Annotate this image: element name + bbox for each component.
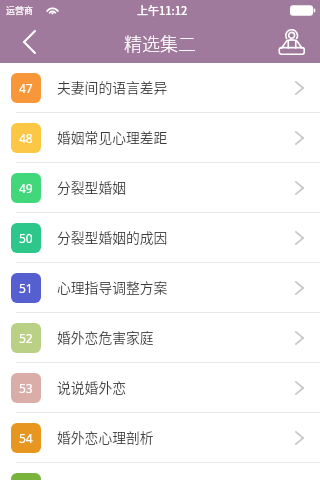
button[interactable]: 54 [0, 413, 320, 463]
button[interactable]: 47 [0, 63, 320, 113]
staticText: 夫妻间的语言差异 [57, 77, 168, 97]
button[interactable]: 53 [0, 363, 320, 413]
button[interactable]: 52 [0, 313, 320, 363]
staticText: 心理指导调整方案 [57, 277, 168, 297]
staticText: 运营商 [6, 4, 34, 17]
button[interactable]: Meditation [264, 20, 320, 63]
staticText: 婚姻常见心理差距 [57, 127, 168, 147]
staticText: 分裂型婚姻 [57, 177, 126, 197]
staticText: 50 [19, 230, 33, 246]
button[interactable]: 51 [0, 263, 320, 313]
staticText: 49 [19, 180, 33, 196]
button[interactable]: 50 [0, 213, 320, 263]
button[interactable]: 49 [0, 163, 320, 213]
staticText: 47 [19, 80, 33, 96]
staticText: 婚外恋心理剖析 [57, 427, 154, 447]
button[interactable]: 55 [0, 463, 320, 480]
staticText: 上午11:12 [137, 2, 188, 18]
button[interactable]: 48 [0, 113, 320, 163]
staticText: 54 [19, 430, 33, 446]
staticText: 说说婚外恋 [57, 377, 126, 397]
staticText: 分裂型婚姻的成因 [57, 227, 168, 247]
staticText: 精选集二 [124, 30, 196, 56]
staticText: 51 [19, 280, 33, 296]
staticText: 婚外恋危害家庭 [57, 327, 154, 347]
staticText: 53 [19, 380, 33, 396]
button[interactable]: Back [0, 20, 56, 63]
staticText: 52 [19, 330, 33, 346]
staticText: 48 [19, 130, 33, 146]
